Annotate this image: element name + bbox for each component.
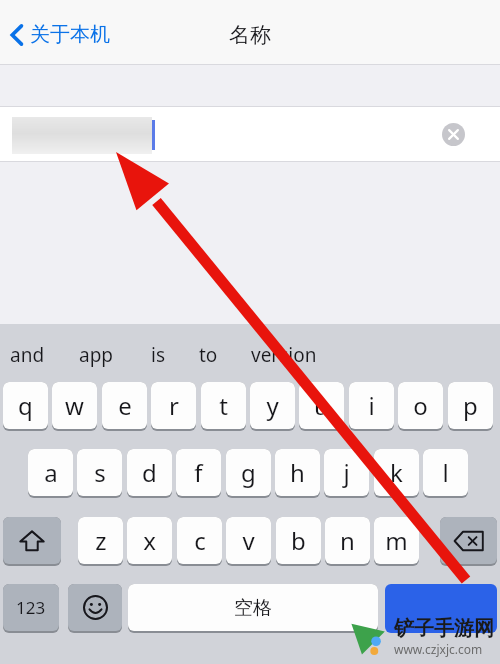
staticText: o [413,389,428,422]
button[interactable]: 关于本机 [0,16,122,53]
staticText: w [65,389,84,422]
staticText: 空格 [234,596,272,620]
button[interactable]: Shift [3,517,61,564]
staticText: d [142,456,157,489]
button[interactable]: g [226,449,271,496]
staticText: 名称 [229,22,271,48]
button[interactable]: y [250,382,295,429]
button[interactable]: a [28,449,73,496]
button[interactable]: Clear text [436,117,470,151]
staticText: e [118,389,132,422]
button[interactable]: and [4,336,51,374]
staticText: www.czjxjc.com [394,641,483,657]
staticText: to [199,342,218,368]
staticText: p [463,389,478,422]
staticText: l [442,456,449,489]
button[interactable]: l [423,449,468,496]
staticText: version [251,342,317,368]
button[interactable]: app [73,336,120,374]
staticText: and [10,342,45,368]
staticText: g [241,456,256,489]
button[interactable]: is [145,336,172,374]
button[interactable]: x [127,517,172,564]
button[interactable]: k [374,449,419,496]
button[interactable]: Delete [440,517,497,564]
button[interactable]: v [226,517,271,564]
button[interactable]: o [398,382,443,429]
button[interactable]: to [193,336,224,374]
staticText: z [95,524,107,557]
staticText: v [242,524,255,557]
button[interactable]: 123 [3,584,59,631]
button[interactable]: p [448,382,493,429]
button[interactable]: z [78,517,123,564]
staticText: 123 [16,596,46,619]
button[interactable]: j [324,449,369,496]
button[interactable]: Return [385,584,497,633]
button[interactable]: d [127,449,172,496]
staticText: u [314,389,329,422]
button[interactable]: h [275,449,320,496]
staticText: x [143,524,156,557]
staticText: 关于本机 [30,22,110,47]
staticText: is [151,342,166,368]
button[interactable]: t [201,382,246,429]
button[interactable]: e [102,382,147,429]
button[interactable]: c [177,517,222,564]
staticText: n [340,524,355,557]
staticText: k [390,456,403,489]
staticText: j [343,456,350,489]
button[interactable]: u [299,382,344,429]
button[interactable]: version [245,336,323,374]
staticText: a [44,456,58,489]
staticText: f [194,456,203,489]
staticText: 铲子手游网 [394,616,494,641]
button[interactable]: s [77,449,122,496]
staticText: q [18,389,33,422]
button[interactable]: Emoji [68,584,122,631]
button[interactable]: r [151,382,196,429]
staticText: i [368,389,375,422]
staticText: y [266,389,279,422]
staticText: h [290,456,305,489]
button[interactable]: m [374,517,419,564]
button[interactable]: f [176,449,221,496]
staticText: c [194,524,206,557]
button[interactable]: n [325,517,370,564]
staticText: s [94,456,106,489]
button[interactable]: w [52,382,97,429]
staticText: r [169,389,179,422]
button[interactable]: b [276,517,321,564]
staticText: b [291,524,306,557]
button[interactable]: i [349,382,394,429]
staticText: t [219,389,228,422]
button[interactable]: q [3,382,48,429]
button[interactable]: 空格 [128,584,378,631]
staticText: app [79,342,114,368]
staticText: m [385,524,408,557]
